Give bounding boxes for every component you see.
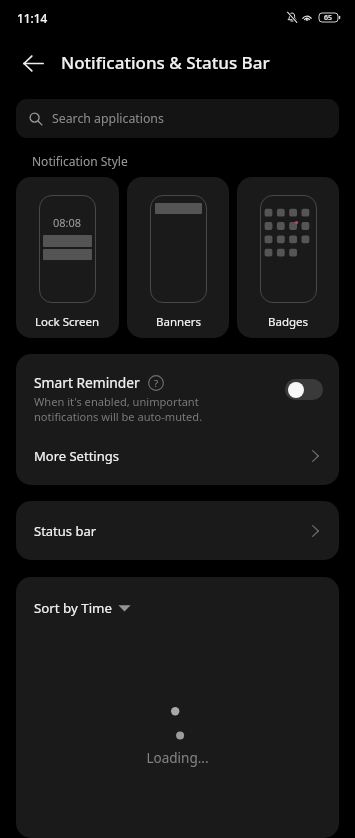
staticText: Lock Screen xyxy=(35,314,100,330)
button[interactable]: Search applications xyxy=(16,99,339,138)
staticText: Badges xyxy=(268,314,309,330)
button[interactable]: 08:08 xyxy=(16,177,119,338)
staticText: ? xyxy=(154,377,159,390)
button[interactable]: Smart Reminder toggle xyxy=(285,379,323,400)
button[interactable]: Smart Reminder xyxy=(16,354,339,426)
staticText: Smart Reminder xyxy=(34,373,140,392)
staticText: Banners xyxy=(156,314,201,330)
staticText: Loading... xyxy=(146,749,209,767)
button[interactable]: Back xyxy=(13,43,53,83)
staticText: 11:14 xyxy=(17,10,48,26)
staticText: Search applications xyxy=(52,110,164,127)
staticText: More Settings xyxy=(34,447,312,465)
staticText: 08:08 xyxy=(53,215,82,230)
staticText: Sort by Time xyxy=(34,599,112,617)
button[interactable]: Banners xyxy=(127,177,229,338)
staticText: 65 xyxy=(324,13,333,22)
staticText: When it's enabled, unimportant notificat… xyxy=(34,394,203,424)
button[interactable]: Badges xyxy=(237,177,339,338)
staticText: Notification Style xyxy=(32,153,128,169)
staticText: Notifications & Status Bar xyxy=(61,51,270,74)
button[interactable]: Status bar xyxy=(16,501,339,560)
button[interactable]: Sort by Time xyxy=(16,577,147,625)
staticText: Status bar xyxy=(34,522,312,540)
button[interactable]: More Settings xyxy=(16,426,339,485)
